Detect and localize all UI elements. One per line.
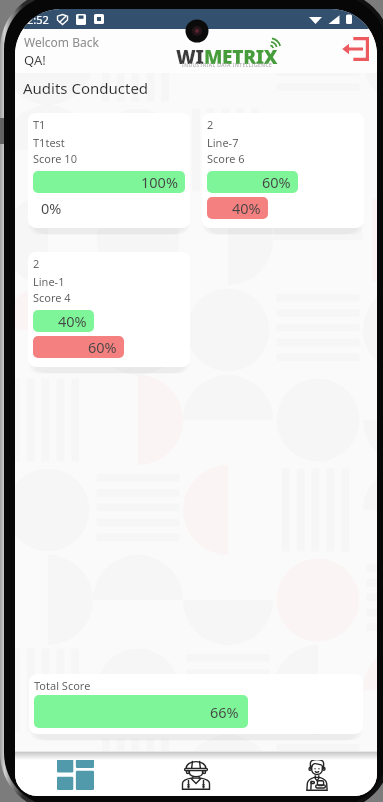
button[interactable]: Profile [291, 751, 343, 796]
staticText: 60% [88, 337, 117, 357]
button[interactable]: T1 [28, 113, 190, 228]
staticText: Score 4 [33, 290, 71, 305]
staticText: INDUSTRIAL DATA INTELLIGENCE [182, 62, 273, 69]
staticText: Total Score [34, 678, 91, 693]
staticText: T1 [33, 117, 46, 132]
staticText: 2:52 [27, 12, 49, 27]
staticText: Line-7 [207, 135, 239, 150]
staticText: 100% [141, 172, 178, 192]
staticText: METRIX [204, 44, 278, 70]
staticText: 2 [207, 117, 214, 132]
staticText: 2 [33, 256, 40, 271]
staticText: 40% [232, 198, 261, 218]
button[interactable]: Total Score [29, 674, 363, 734]
button[interactable]: Workers [170, 751, 222, 796]
button[interactable]: 2 [28, 252, 190, 367]
staticText: 0% [41, 198, 62, 218]
button[interactable]: Dashboard [49, 751, 101, 796]
staticText: Welcom Back [24, 34, 99, 50]
staticText: Score 6 [207, 151, 245, 166]
staticText: QA! [24, 51, 46, 69]
staticText: 66% [210, 702, 239, 722]
staticText: Audits Conducted [23, 78, 149, 98]
staticText: T1test [33, 135, 65, 150]
staticText: Score 10 [33, 151, 77, 166]
staticText: 60% [262, 172, 291, 192]
button[interactable]: 2 [202, 113, 364, 228]
button[interactable]: Logout [342, 37, 369, 61]
staticText: Line-1 [33, 274, 65, 289]
staticText: WI [176, 44, 204, 70]
staticText: 40% [58, 311, 87, 331]
